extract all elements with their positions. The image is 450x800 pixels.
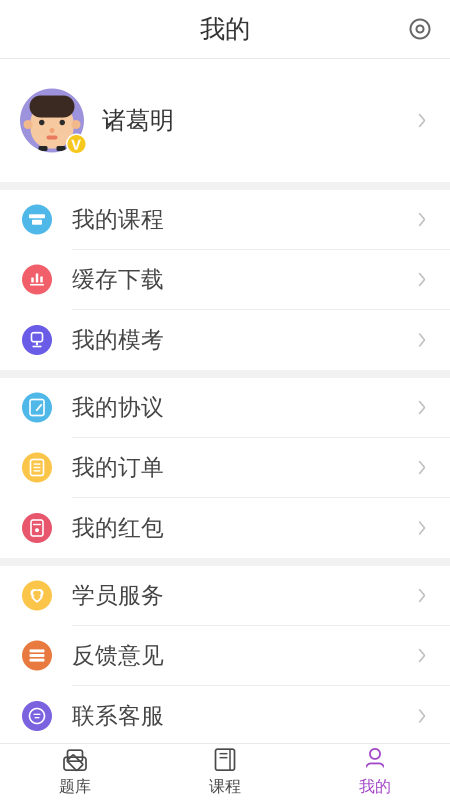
staticText: 缓存下载 xyxy=(72,266,164,293)
staticText: 我的课程 xyxy=(72,206,164,233)
button[interactable]: 反馈意见 xyxy=(0,626,450,686)
button[interactable]: 课程 xyxy=(150,744,300,800)
button[interactable]: 缓存下载 xyxy=(0,250,450,310)
button[interactable]: 我的模考 xyxy=(0,310,450,370)
staticText: 我的 xyxy=(200,13,250,44)
staticText: 题库 xyxy=(59,777,91,796)
button[interactable]: 学员服务 xyxy=(0,566,450,626)
staticText: 我的订单 xyxy=(72,454,164,481)
staticText: 诸葛明 xyxy=(102,106,174,135)
staticText: 我的 xyxy=(359,777,391,796)
staticText: 我的红包 xyxy=(72,514,164,542)
button[interactable]: 我的协议 xyxy=(0,378,450,438)
staticText: V xyxy=(71,134,81,154)
button[interactable]: 设置 xyxy=(398,7,442,51)
staticText: 反馈意见 xyxy=(72,642,164,669)
button[interactable]: 题库 xyxy=(0,744,150,800)
staticText: 我的协议 xyxy=(72,394,164,421)
staticText: 学员服务 xyxy=(72,582,164,609)
staticText: 联系客服 xyxy=(72,702,164,730)
button[interactable]: 我的红包 xyxy=(0,498,450,558)
staticText: 课程 xyxy=(209,777,241,796)
button[interactable]: 联系客服 xyxy=(0,686,450,746)
button[interactable]: 我的订单 xyxy=(0,438,450,498)
staticText: 我的模考 xyxy=(72,326,164,354)
button[interactable]: 我的课程 xyxy=(0,190,450,250)
button[interactable]: 我的 xyxy=(300,744,450,800)
button[interactable]: V xyxy=(0,59,450,182)
